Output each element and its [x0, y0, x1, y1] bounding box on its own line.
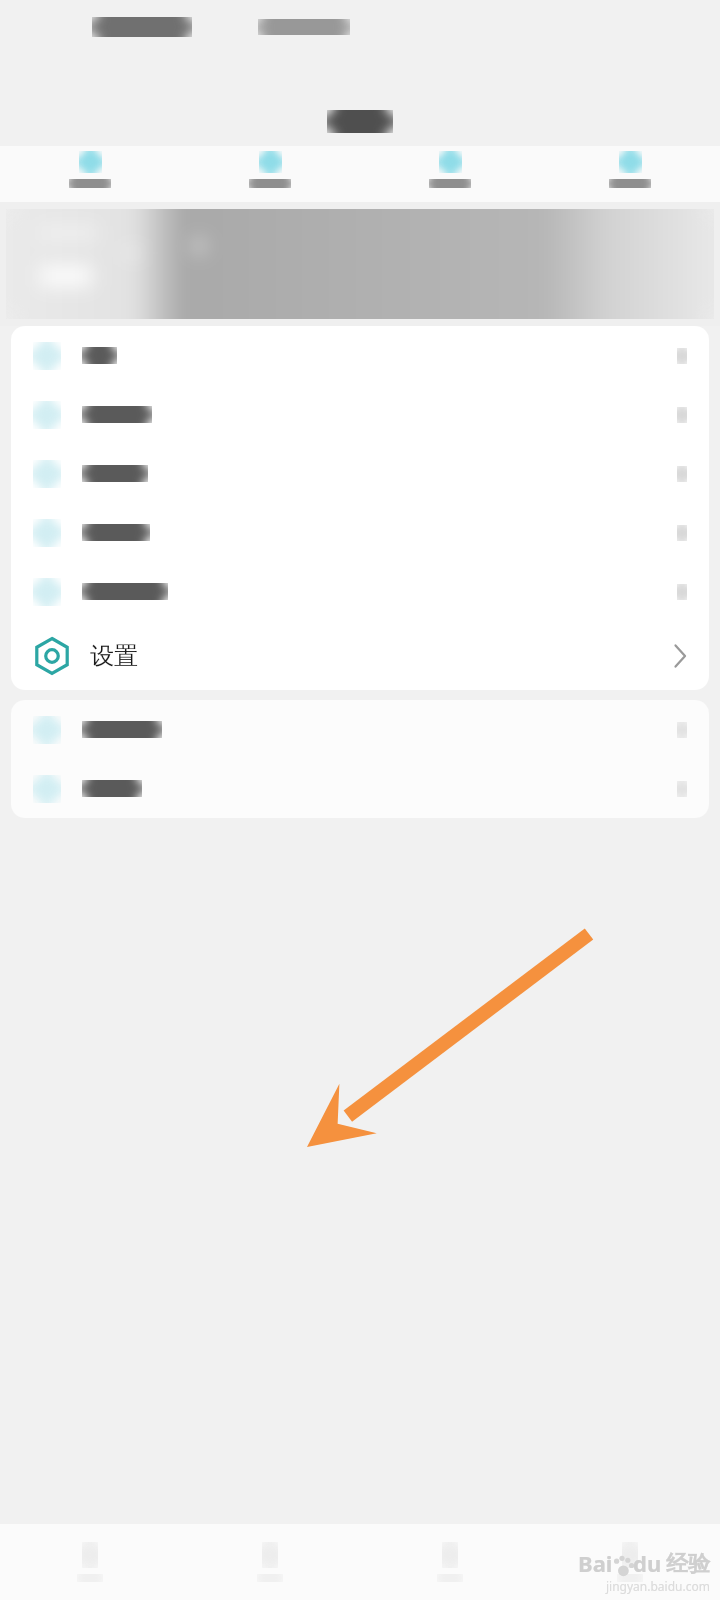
staticText: 经验	[666, 1550, 710, 1578]
button[interactable]	[11, 562, 709, 621]
button[interactable]	[540, 1524, 720, 1600]
staticText: jingyan.baidu.com	[606, 1578, 710, 1594]
button[interactable]	[11, 759, 709, 818]
staticText: du	[633, 1548, 662, 1578]
staticText: 设置	[90, 641, 138, 671]
other: 设置	[33, 637, 71, 675]
staticText: Bai	[578, 1548, 613, 1578]
button[interactable]	[0, 202, 720, 326]
button[interactable]: 设置	[11, 621, 709, 690]
button[interactable]	[11, 385, 709, 444]
button[interactable]	[11, 326, 709, 385]
button[interactable]	[360, 146, 540, 202]
button[interactable]	[180, 146, 360, 202]
button[interactable]	[11, 700, 709, 759]
button[interactable]	[11, 444, 709, 503]
button[interactable]	[540, 146, 720, 202]
button[interactable]	[11, 503, 709, 562]
button[interactable]	[0, 146, 180, 202]
